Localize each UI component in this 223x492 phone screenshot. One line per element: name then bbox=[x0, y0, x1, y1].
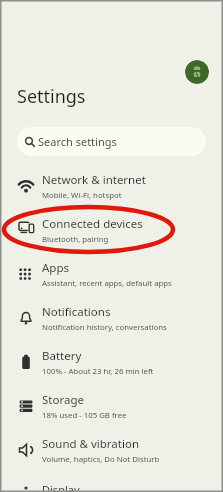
staticText: Settings bbox=[17, 84, 86, 109]
staticText: Volume, haptics, Do Not Disturb bbox=[42, 454, 160, 465]
staticText: 100% - About 23 hr, 26 min left bbox=[42, 366, 154, 377]
staticText: Network & internet bbox=[42, 172, 146, 188]
button[interactable]: Connected devices bbox=[0, 208, 223, 252]
staticText: Display bbox=[42, 482, 80, 492]
staticText: Bluetooth, pairing bbox=[42, 234, 109, 245]
button[interactable] bbox=[185, 60, 209, 84]
staticText: Notifications bbox=[42, 304, 111, 320]
staticText: Connected devices bbox=[42, 216, 143, 232]
staticText: Search settings bbox=[38, 134, 117, 149]
button[interactable]: Apps bbox=[0, 252, 223, 296]
staticText: Notification history, conversations bbox=[42, 322, 167, 333]
button[interactable]: Battery bbox=[0, 340, 223, 384]
button[interactable]: Search settings bbox=[17, 127, 206, 156]
staticText: Mobile, Wi-Fi, hotspot bbox=[42, 190, 122, 201]
staticText: Battery bbox=[42, 348, 82, 364]
staticText: Sound & vibration bbox=[42, 436, 139, 452]
button[interactable]: Display bbox=[0, 472, 223, 492]
button[interactable]: Sound & vibration bbox=[0, 428, 223, 472]
button[interactable]: Notifications bbox=[0, 296, 223, 340]
button[interactable]: Network & internet bbox=[0, 164, 223, 208]
button[interactable]: Storage bbox=[0, 384, 223, 428]
staticText: 18% used - 105 GB free bbox=[42, 410, 127, 421]
staticText: Storage bbox=[42, 392, 84, 408]
staticText: Apps bbox=[42, 260, 70, 276]
staticText: Assistant, recent apps, default apps bbox=[42, 278, 172, 289]
